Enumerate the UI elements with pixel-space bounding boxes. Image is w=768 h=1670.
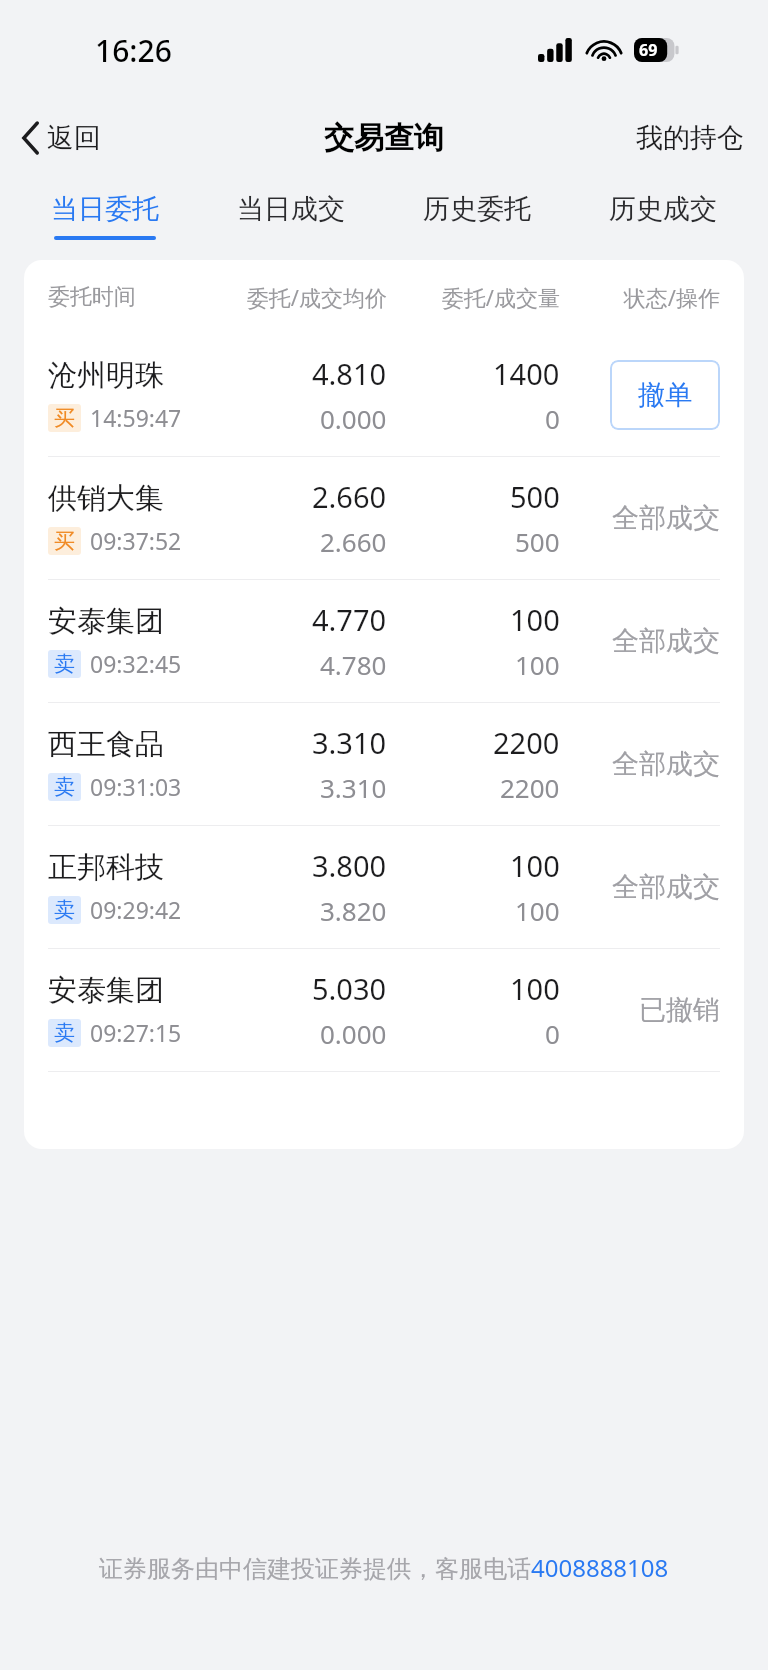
button[interactable]: 安泰集团: [24, 949, 744, 1071]
staticText: 卖: [54, 1020, 75, 1046]
staticText: 3.820: [320, 893, 387, 928]
button[interactable]: 正邦科技: [24, 826, 744, 948]
button[interactable]: 沧州明珠: [24, 334, 744, 456]
staticText: 卖: [54, 897, 75, 923]
staticText: 0.000: [320, 1016, 387, 1051]
staticText: 100: [510, 846, 560, 885]
staticText: 状态/操作: [560, 282, 720, 312]
button[interactable]: 当日委托: [12, 176, 198, 256]
staticText: 西王食品: [48, 726, 164, 763]
staticText: 09:32:45: [90, 648, 182, 679]
staticText: 我的持仓: [636, 121, 744, 155]
staticText: 09:29:42: [90, 894, 182, 925]
button[interactable]: 证券服务由中信建投证券提供，客服电话4008888108: [99, 1551, 669, 1584]
staticText: 09:37:52: [90, 525, 182, 556]
staticText: 卖: [54, 774, 75, 800]
staticText: 09:27:15: [90, 1017, 182, 1048]
staticText: 09:31:03: [90, 771, 182, 802]
staticText: 3.310: [312, 723, 387, 762]
staticText: 500: [510, 477, 560, 516]
button[interactable]: 当日成交: [198, 176, 384, 256]
staticText: 100: [515, 893, 560, 928]
staticText: 已撤销: [639, 993, 720, 1027]
staticText: 2200: [493, 723, 560, 762]
staticText: 2.660: [320, 524, 387, 559]
staticText: 正邦科技: [48, 849, 164, 886]
button[interactable]: 撤单: [610, 360, 720, 430]
staticText: 100: [510, 969, 560, 1008]
staticText: 1400: [493, 354, 560, 393]
staticText: 当日成交: [237, 192, 345, 226]
staticText: 返回: [47, 121, 101, 155]
staticText: 2.660: [312, 477, 387, 516]
staticText: 全部成交: [612, 501, 720, 535]
staticText: 交易查询: [324, 119, 444, 157]
staticText: 沧州明珠: [48, 357, 164, 394]
button[interactable]: 历史成交: [570, 176, 756, 256]
staticText: 100: [515, 647, 560, 682]
staticText: 500: [515, 524, 560, 559]
staticText: 14:59:47: [90, 402, 182, 433]
staticText: 委托时间: [48, 283, 195, 311]
button[interactable]: 安泰集团: [24, 580, 744, 702]
staticText: 安泰集团: [48, 603, 164, 640]
staticText: 0.000: [320, 401, 387, 436]
staticText: 2200: [500, 770, 560, 805]
staticText: 0: [545, 1016, 560, 1051]
staticText: 全部成交: [612, 747, 720, 781]
staticText: 5.030: [312, 969, 387, 1008]
button[interactable]: 历史委托: [384, 176, 570, 256]
staticText: 4.780: [320, 647, 387, 682]
staticText: 卖: [54, 651, 75, 677]
staticText: 全部成交: [612, 624, 720, 658]
button[interactable]: 返回: [0, 113, 115, 163]
staticText: 买: [54, 405, 75, 431]
button[interactable]: 西王食品: [24, 703, 744, 825]
staticText: 3.310: [320, 770, 387, 805]
staticText: 4.770: [312, 600, 387, 639]
staticText: 买: [54, 528, 75, 554]
button[interactable]: 供销大集: [24, 457, 744, 579]
button[interactable]: 我的持仓: [612, 111, 768, 165]
staticText: 撤单: [638, 378, 692, 412]
staticText: 安泰集团: [48, 972, 164, 1009]
staticText: 委托/成交量: [387, 282, 560, 312]
staticText: 4.810: [312, 354, 387, 393]
staticText: 历史成交: [609, 192, 717, 226]
staticText: 3.800: [312, 846, 387, 885]
staticText: 全部成交: [612, 870, 720, 904]
staticText: 供销大集: [48, 480, 164, 517]
staticText: 委托/成交均价: [195, 282, 387, 312]
staticText: 100: [510, 600, 560, 639]
staticText: 16:26: [95, 30, 172, 71]
staticText: 历史委托: [423, 192, 531, 226]
staticText: 当日委托: [51, 192, 159, 226]
staticText: 0: [545, 401, 560, 436]
staticText: 69: [639, 39, 658, 61]
